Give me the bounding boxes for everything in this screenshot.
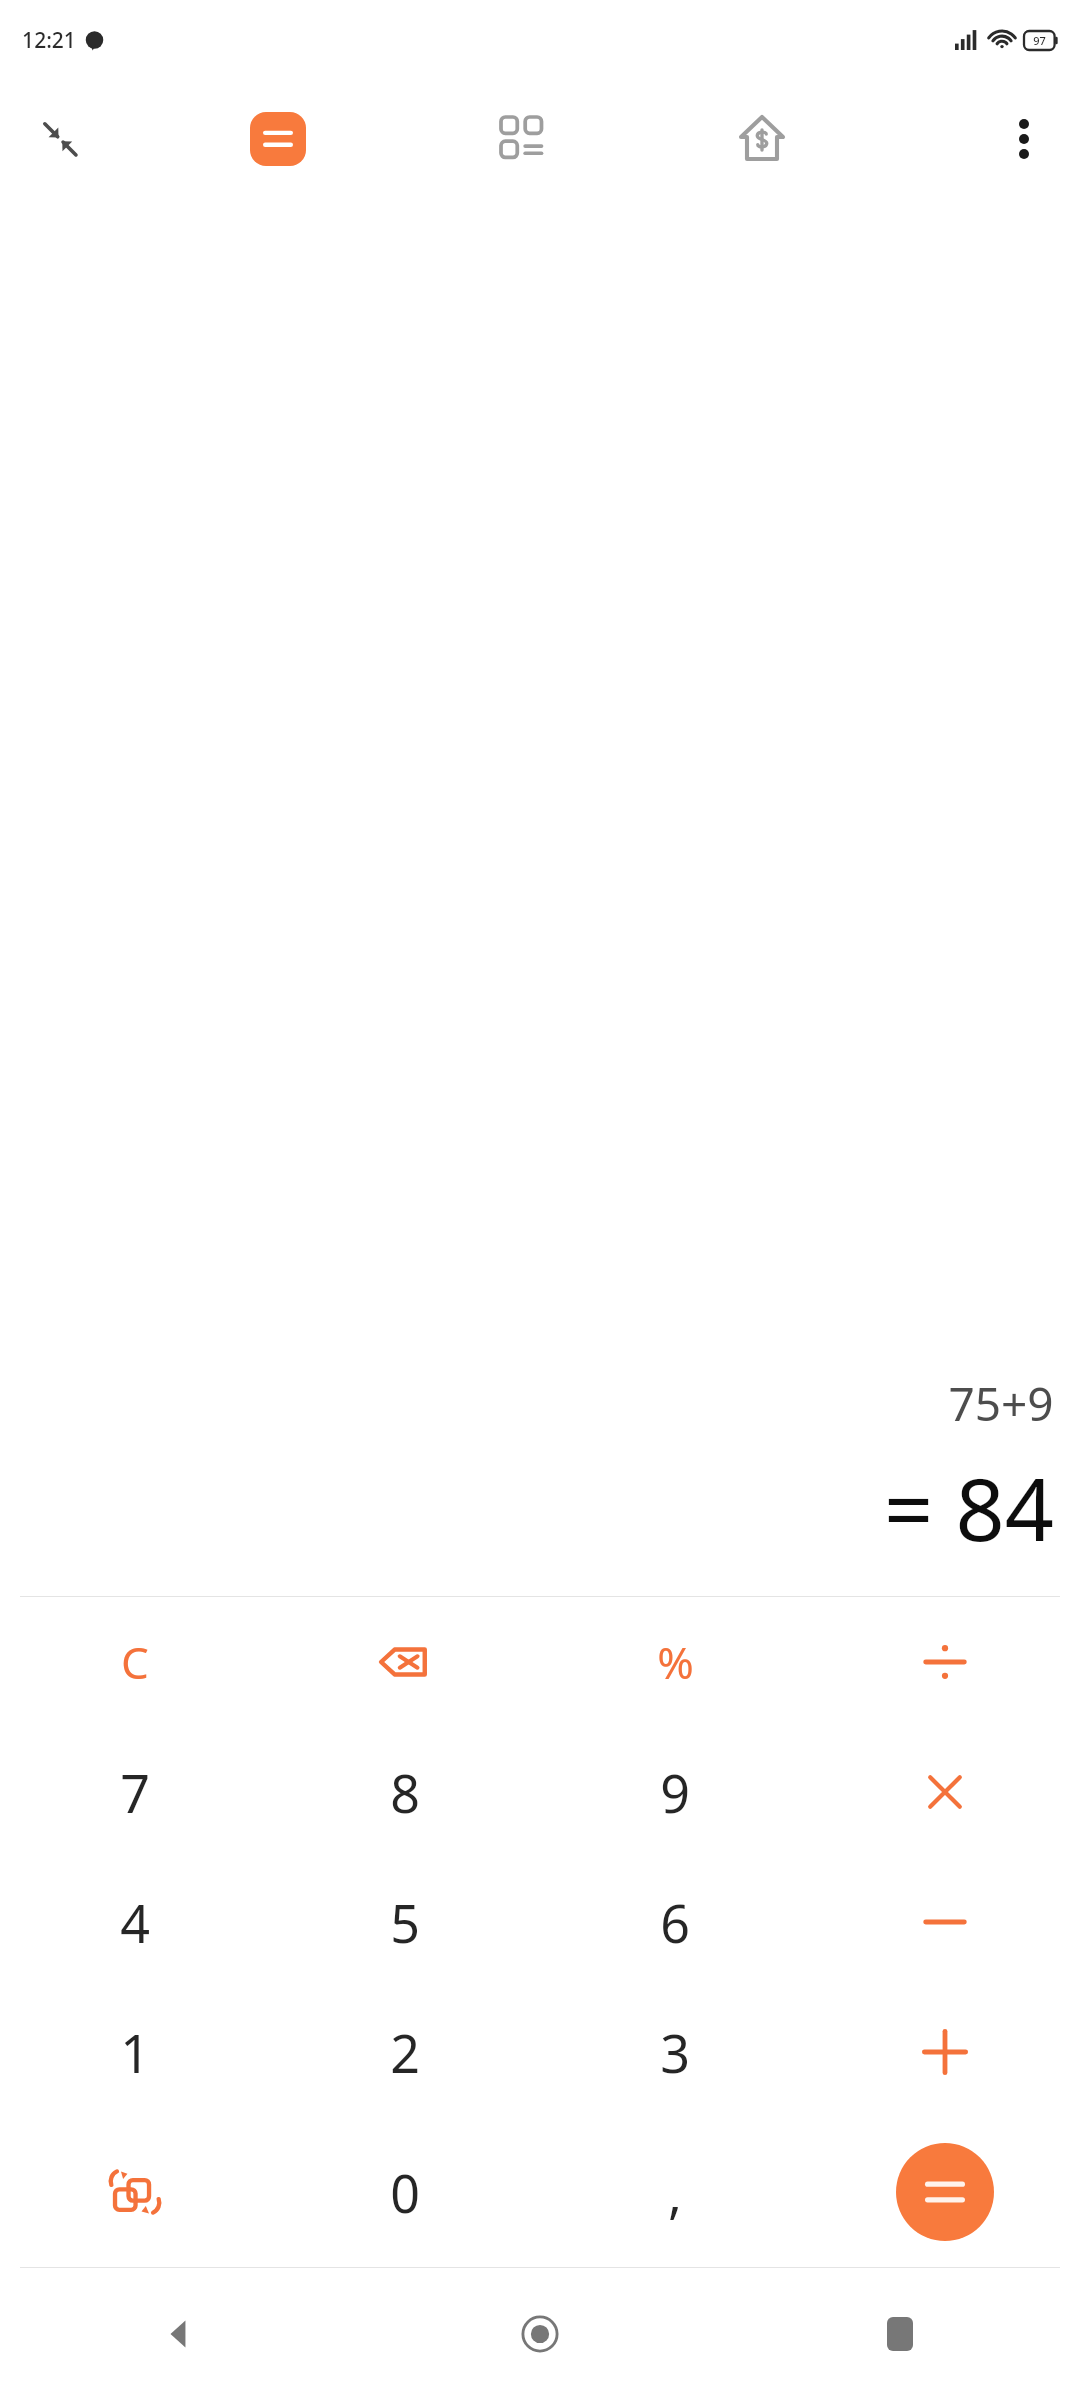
staticText: 0	[390, 2157, 420, 2228]
button[interactable]: Mortgage	[722, 99, 802, 179]
staticText: ,	[668, 2157, 682, 2228]
button[interactable]: Home	[360, 2268, 720, 2400]
button[interactable]: 8	[270, 1727, 540, 1857]
button[interactable]: 5	[270, 1857, 540, 1987]
button[interactable]: More options	[986, 101, 1062, 177]
staticText: 2	[390, 2017, 420, 2088]
button[interactable]: Unit converter	[0, 2117, 270, 2267]
staticText: 97	[1033, 33, 1046, 48]
button[interactable]: 6	[540, 1857, 810, 1987]
staticText: = 84	[884, 1449, 1054, 1566]
staticText: 12:21	[22, 26, 76, 55]
button[interactable]: Backspace	[270, 1597, 540, 1727]
button[interactable]: Plus	[810, 1987, 1080, 2117]
staticText: 9	[660, 1757, 690, 1828]
button[interactable]: 2	[270, 1987, 540, 2117]
staticText: 3	[660, 2017, 690, 2088]
button[interactable]: Equals	[810, 2117, 1080, 2267]
staticText: 7	[120, 1757, 150, 1828]
staticText: 6	[660, 1887, 690, 1958]
staticText: %	[657, 1632, 694, 1692]
button[interactable]: Back	[0, 2268, 360, 2400]
staticText: 5	[390, 1887, 420, 1958]
button[interactable]: Converters	[485, 101, 561, 177]
button[interactable]: 1	[0, 1987, 270, 2117]
staticText: C	[121, 1632, 149, 1692]
button[interactable]: Minus	[810, 1857, 1080, 1987]
button[interactable]: 4	[0, 1857, 270, 1987]
staticText: 1	[120, 2017, 150, 2088]
button[interactable]: 7	[0, 1727, 270, 1857]
button[interactable]: Recents	[720, 2268, 1080, 2400]
button[interactable]: Multiply	[810, 1727, 1080, 1857]
staticText: 4	[120, 1887, 150, 1958]
button[interactable]: Calculator	[240, 101, 316, 177]
button[interactable]: Collapse	[22, 101, 98, 177]
button[interactable]: C	[0, 1597, 270, 1727]
staticText: 8	[390, 1757, 420, 1828]
button[interactable]: 3	[540, 1987, 810, 2117]
button[interactable]: Divide	[810, 1597, 1080, 1727]
button[interactable]: 0	[270, 2117, 540, 2267]
staticText: 75+9	[948, 1372, 1054, 1435]
button[interactable]: %	[540, 1597, 810, 1727]
button[interactable]: ,	[540, 2117, 810, 2267]
button[interactable]: 9	[540, 1727, 810, 1857]
